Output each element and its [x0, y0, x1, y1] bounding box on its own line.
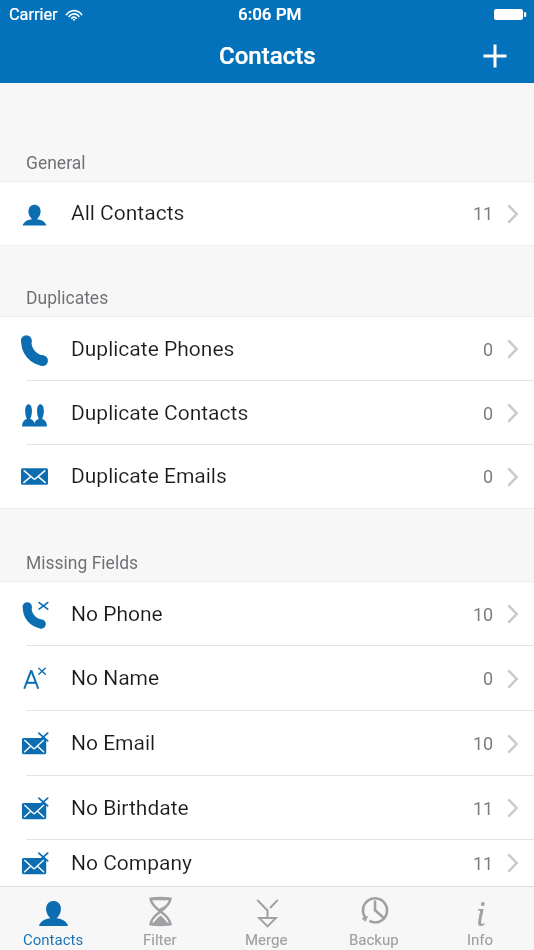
staticText: Contacts	[23, 931, 84, 949]
button[interactable]: Duplicate Emails	[0, 445, 534, 508]
staticText: No Email	[71, 731, 156, 756]
staticText: 11	[473, 798, 494, 819]
staticText: 10	[473, 604, 494, 625]
button[interactable]: All Contacts	[0, 182, 534, 245]
staticText: Duplicate Emails	[71, 464, 227, 489]
button[interactable]: Add contact	[470, 31, 520, 81]
staticText: 0	[483, 466, 494, 487]
staticText: 0	[483, 403, 494, 424]
staticText: Duplicate Contacts	[71, 401, 249, 426]
button[interactable]: No Email	[0, 711, 534, 776]
staticText: No Phone	[71, 602, 163, 627]
staticText: Duplicates	[26, 288, 109, 309]
button[interactable]: Filter	[106, 894, 213, 950]
staticText: Merge	[245, 931, 288, 949]
staticText: Contacts	[219, 42, 316, 70]
staticText: No Birthdate	[71, 796, 189, 821]
staticText: General	[26, 153, 86, 174]
staticText: 0	[483, 339, 494, 360]
button[interactable]: Contacts	[0, 894, 106, 950]
staticText: No Company	[71, 851, 192, 876]
staticText: 0	[483, 668, 494, 689]
staticText: 11	[473, 203, 494, 224]
staticText: Filter	[143, 931, 177, 949]
staticText: i	[476, 894, 486, 928]
staticText: Backup	[349, 931, 399, 949]
staticText: 6:06 PM	[238, 4, 302, 24]
button[interactable]: No Phone	[0, 582, 534, 646]
staticText: Duplicate Phones	[71, 337, 235, 362]
button[interactable]: Duplicate Phones	[0, 317, 534, 381]
button[interactable]: i	[427, 894, 534, 950]
staticText: Info	[467, 931, 494, 949]
staticText: Missing Fields	[26, 553, 139, 574]
button[interactable]: No Company	[0, 840, 534, 886]
button[interactable]: Backup	[320, 894, 427, 950]
staticText: 10	[473, 733, 494, 754]
button[interactable]: No Name	[0, 646, 534, 711]
staticText: 11	[473, 853, 494, 874]
staticText: All Contacts	[71, 201, 185, 226]
button[interactable]: No Birthdate	[0, 776, 534, 840]
staticText: Carrier	[9, 5, 58, 24]
staticText: No Name	[71, 666, 160, 691]
button[interactable]: Duplicate Contacts	[0, 381, 534, 445]
button[interactable]: Merge	[213, 894, 320, 950]
